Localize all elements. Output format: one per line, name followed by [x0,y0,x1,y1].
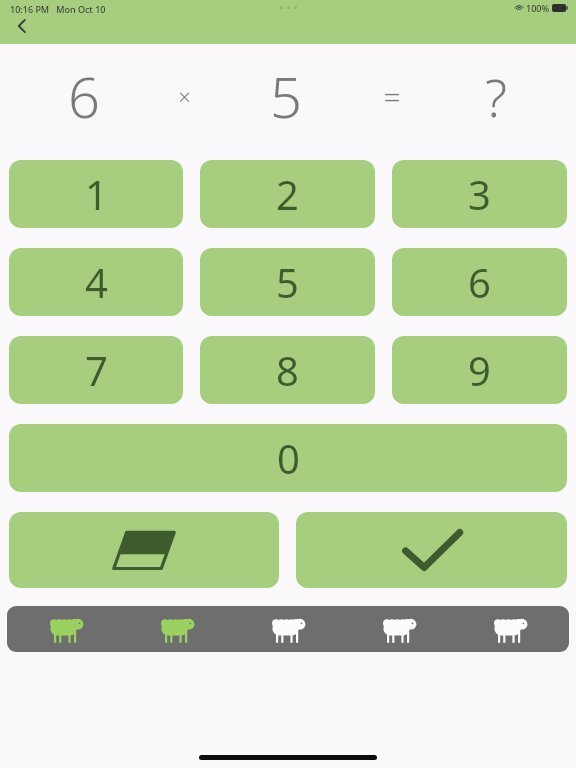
staticText: 6 [468,255,491,309]
staticText: 10:16 PM Mon Oct 10 [10,3,106,15]
staticText: 8 [276,343,299,397]
staticText: 9 [468,343,491,397]
staticText: 2 [276,167,299,221]
button[interactable]: Erase [9,512,279,588]
staticText: = [383,76,401,117]
button[interactable]: 6 [392,248,567,316]
staticText: 5 [276,255,299,309]
staticText: 5 [270,58,302,134]
button[interactable]: 0 [9,424,567,492]
staticText: ? [485,61,507,132]
button[interactable]: Back [4,8,40,44]
button[interactable]: 7 [9,336,183,404]
staticText: 0 [277,431,300,485]
staticText: 100% [526,2,550,14]
staticText: 3 [468,167,491,221]
staticText: 4 [85,255,108,309]
button[interactable]: 2 [200,160,375,228]
button[interactable]: 4 [9,248,183,316]
button[interactable]: 1 [9,160,183,228]
staticText: × [178,81,191,111]
button[interactable]: 9 [392,336,567,404]
staticText: 7 [85,343,108,397]
staticText: 1 [85,167,108,221]
button[interactable]: 8 [200,336,375,404]
button[interactable]: 5 [200,248,375,316]
button[interactable]: 3 [392,160,567,228]
staticText: 6 [68,58,100,134]
button[interactable]: Check answer [296,512,567,588]
